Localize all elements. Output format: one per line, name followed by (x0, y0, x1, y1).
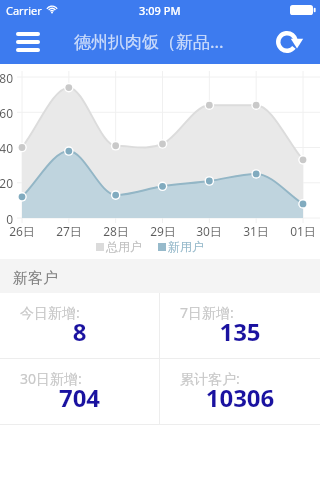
button[interactable]: 7日新增: (160, 293, 320, 358)
staticText: 新客户 (13, 269, 58, 288)
staticText: 27日 (49, 223, 89, 239)
staticText: Carrier (6, 3, 42, 18)
staticText: 3:09 PM (139, 3, 181, 18)
staticText: 10306 (160, 381, 320, 414)
staticText: 20 (0, 175, 13, 191)
staticText: 7日新增: (180, 303, 234, 322)
button[interactable]: Menu (0, 20, 56, 64)
staticText: 135 (160, 315, 320, 348)
button[interactable]: Refresh (268, 20, 320, 64)
staticText: 31日 (236, 223, 276, 239)
staticText: 0 (0, 211, 13, 227)
button[interactable]: 累计客户: (160, 359, 320, 424)
staticText: 30日 (189, 223, 229, 239)
staticText: 80 (0, 70, 13, 86)
staticText: 26日 (2, 223, 42, 239)
staticText: 01日 (283, 223, 320, 239)
staticText: 29日 (143, 223, 183, 239)
staticText: 30日新增: (20, 369, 82, 388)
staticText: 德州扒肉饭（新品... (74, 30, 224, 53)
staticText: 总用户 (106, 239, 142, 254)
button[interactable]: 今日新增: (0, 293, 159, 358)
staticText: 60 (0, 105, 13, 121)
staticText: 新用户 (168, 239, 204, 254)
staticText: 8 (0, 315, 159, 348)
staticText: 今日新增: (20, 303, 80, 322)
staticText: 704 (0, 381, 159, 414)
staticText: 40 (0, 140, 13, 156)
staticText: 累计客户: (180, 369, 240, 388)
staticText: 28日 (96, 223, 136, 239)
button[interactable]: 30日新增: (0, 359, 159, 424)
